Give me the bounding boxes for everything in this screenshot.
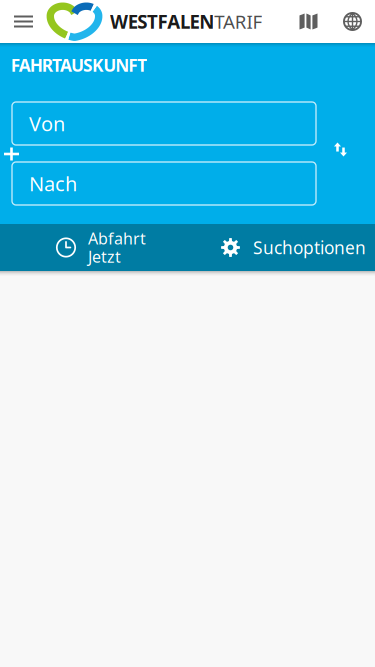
staticText: Nach — [29, 170, 77, 197]
button[interactable]: Suchoptionen — [205, 224, 375, 271]
staticText: FAHRTAUSKUNFT — [11, 53, 147, 76]
staticText: Von — [29, 110, 65, 137]
button[interactable]: Von — [12, 102, 316, 145]
button[interactable]: Map — [287, 0, 330, 43]
staticText: Jetzt — [88, 246, 121, 267]
staticText: WESTFALEN — [110, 9, 214, 34]
staticText: Suchoptionen — [253, 236, 366, 259]
button[interactable]: Swap origin and destination — [323, 132, 357, 166]
staticText: Abfahrt — [88, 228, 146, 249]
button[interactable]: Nach — [12, 162, 316, 205]
button[interactable]: Language — [330, 0, 375, 43]
staticText: TARIF — [214, 9, 262, 34]
button[interactable]: Add intermediate stop — [0, 139, 26, 169]
button[interactable]: Menu — [0, 0, 47, 43]
button[interactable]: Abfahrt — [0, 224, 205, 271]
